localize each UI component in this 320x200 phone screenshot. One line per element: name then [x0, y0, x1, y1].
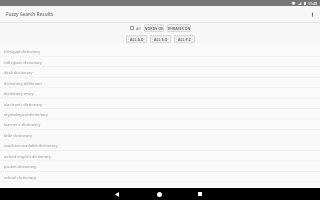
button[interactable]: WORDS ON	[144, 24, 164, 32]
button[interactable]: pocket dictionary	[0, 161, 320, 171]
button[interactable]: machine readable dictionary	[0, 140, 320, 150]
staticText: WORDS ON	[144, 26, 164, 31]
staticText: PHRASES ON	[168, 26, 191, 31]
staticText: school dictionary	[4, 175, 36, 180]
staticText: ALL A-D	[130, 37, 144, 42]
staticText: 11:45	[308, 1, 318, 6]
button[interactable]: PHRASES ON	[167, 24, 191, 32]
staticText: machine readable dictionary	[4, 143, 58, 148]
staticText: pocket dictionary	[4, 164, 37, 169]
button[interactable]: ALL E-O	[150, 35, 171, 43]
button[interactable]: desk dictionary	[0, 67, 320, 77]
staticText: All	[136, 26, 141, 31]
button[interactable]: etymological dictionary	[0, 109, 320, 119]
button[interactable]: Back	[105, 188, 129, 200]
button[interactable]: school dictionary	[0, 172, 320, 182]
staticText: little dictionary	[4, 133, 32, 138]
staticText: collegiate dictionary	[4, 60, 42, 65]
button[interactable]: ALL P-Z	[174, 35, 195, 43]
staticText: dictionary definition	[4, 81, 42, 86]
staticText: Fuzzy Search Results	[6, 11, 54, 18]
button[interactable]: oxford english dictionary	[0, 151, 320, 161]
button[interactable]: ALL A-D	[126, 35, 147, 43]
staticText: ALL E-O	[154, 37, 168, 42]
button[interactable]: Home	[147, 188, 171, 200]
button[interactable]: electronic dictionary	[0, 99, 320, 109]
staticText: bilingual dictionary	[4, 49, 40, 54]
staticText: etymological dictionary	[4, 112, 48, 117]
button[interactable]: collegiate dictionary	[0, 57, 320, 67]
staticText: learner's dictionary	[4, 122, 41, 127]
staticText: ALL P-Z	[178, 37, 191, 42]
button[interactable]: dictionary definition	[0, 78, 320, 88]
button[interactable]: Recents	[188, 188, 212, 200]
button[interactable]: All checkbox	[130, 26, 134, 30]
staticText: oxford english dictionary	[4, 154, 51, 159]
button[interactable]: learner's dictionary	[0, 119, 320, 129]
button[interactable]: More options	[304, 6, 320, 22]
staticText: dictionary entry	[4, 91, 34, 96]
button[interactable]: dictionary entry	[0, 88, 320, 98]
staticText: electronic dictionary	[4, 102, 43, 107]
button[interactable]: little dictionary	[0, 130, 320, 140]
button[interactable]: bilingual dictionary	[0, 46, 320, 56]
staticText: desk dictionary	[4, 70, 33, 75]
